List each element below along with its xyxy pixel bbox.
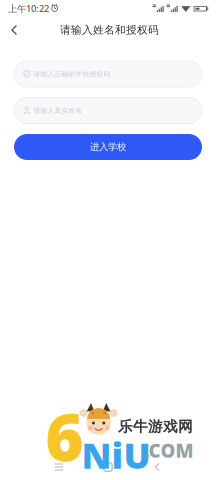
staticText: 请输入真实姓名 xyxy=(34,106,83,115)
staticText: 请输入正确的学校授权码 xyxy=(34,70,111,78)
button[interactable]: Home xyxy=(90,457,126,477)
button[interactable]: Back xyxy=(3,17,25,43)
button[interactable]: Back xyxy=(139,457,175,477)
button[interactable]: 请输入真实姓名 xyxy=(14,97,202,123)
staticText: 6 xyxy=(45,392,83,479)
staticText: 乐牛游戏网 xyxy=(118,417,193,435)
button[interactable]: 请输入正确的学校授权码 xyxy=(14,61,202,87)
staticText: .COM xyxy=(145,438,194,463)
button[interactable]: 进入学校 xyxy=(14,134,202,160)
staticText: NiU xyxy=(82,431,151,479)
staticText: 上午10:22 xyxy=(8,2,49,15)
staticText: 进入学校 xyxy=(90,141,126,153)
button[interactable]: Recent apps xyxy=(41,457,77,477)
staticText: 请输入姓名和授权码 xyxy=(60,23,159,36)
